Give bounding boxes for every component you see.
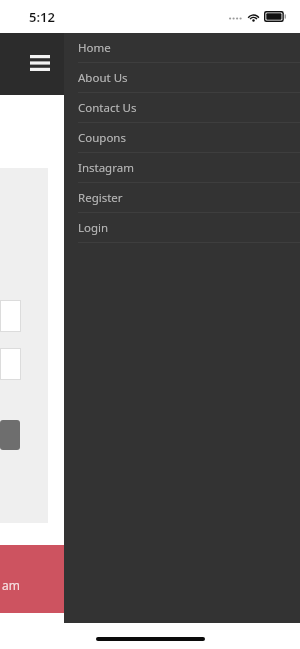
button[interactable]: Open navigation menu bbox=[26, 48, 54, 78]
button[interactable]: am bbox=[0, 545, 300, 613]
button[interactable]: Instagram bbox=[64, 153, 300, 183]
staticText: am bbox=[2, 577, 20, 593]
button[interactable]: Contact Us bbox=[64, 93, 300, 123]
button[interactable]: Text field bbox=[0, 300, 21, 332]
staticText: Contact Us bbox=[78, 100, 137, 116]
staticText: About Us bbox=[78, 70, 128, 86]
staticText: Coupons bbox=[78, 130, 126, 146]
button[interactable]: Text field bbox=[0, 348, 21, 380]
button[interactable]: About Us bbox=[64, 63, 300, 93]
staticText: Home bbox=[78, 40, 111, 56]
button[interactable]: Coupons bbox=[64, 123, 300, 153]
button[interactable]: Home bbox=[64, 33, 300, 63]
staticText: Login bbox=[78, 220, 109, 236]
staticText: Instagram bbox=[78, 160, 134, 176]
button[interactable]: Login bbox=[64, 213, 300, 243]
staticText: Register bbox=[78, 190, 123, 206]
staticText: 5:12 bbox=[29, 8, 55, 26]
button[interactable]: Submit bbox=[0, 420, 20, 450]
button[interactable]: Register bbox=[64, 183, 300, 213]
